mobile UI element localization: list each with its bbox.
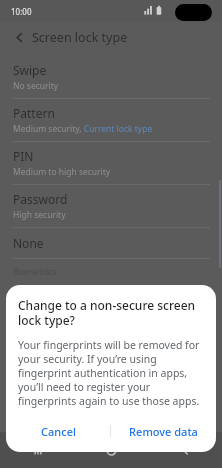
button[interactable]: Cancel: [6, 418, 110, 444]
button[interactable]: Navigate up: [8, 26, 30, 48]
button[interactable]: Back: [148, 432, 222, 468]
button[interactable]: Pattern: [0, 99, 222, 141]
staticText: Your fingerprints will be removed for yo…: [18, 338, 206, 408]
staticText: Swipe: [13, 62, 47, 78]
staticText: Screen lock type: [32, 29, 128, 46]
staticText: Remove data: [129, 424, 198, 439]
button[interactable]: Remove data: [111, 418, 216, 444]
staticText: Medium security, Current lock type: [13, 123, 153, 135]
button[interactable]: Password: [0, 185, 222, 227]
button[interactable]: Swipe: [0, 56, 222, 98]
button[interactable]: None: [0, 228, 222, 258]
button[interactable]: Recent apps: [0, 432, 74, 468]
staticText: 10:00: [11, 6, 32, 17]
staticText: High security: [13, 209, 66, 221]
staticText: Password: [13, 191, 68, 207]
staticText: Cancel: [41, 424, 76, 439]
staticText: Medium to high security: [13, 166, 111, 178]
button[interactable]: Home: [74, 432, 148, 468]
staticText: None: [13, 235, 44, 251]
staticText: Biometrics: [13, 266, 57, 278]
staticText: PIN: [13, 148, 34, 164]
button[interactable]: PIN: [0, 142, 222, 184]
staticText: No security: [13, 80, 59, 92]
staticText: Pattern: [13, 105, 55, 121]
staticText: Change to a non-secure screen lock type?: [18, 297, 202, 328]
